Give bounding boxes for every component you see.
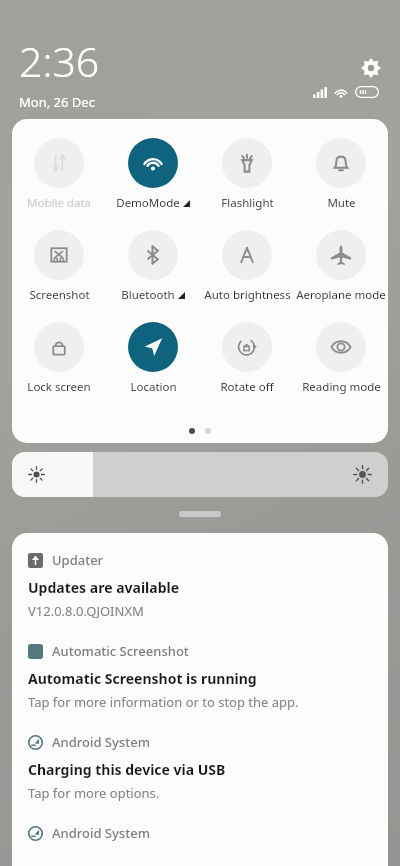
staticText: Mon, 26 Dec xyxy=(19,93,95,111)
button[interactable]: Reading mode xyxy=(294,320,388,397)
staticText: Automatic Screenshot xyxy=(52,642,189,660)
staticText: Android System xyxy=(52,733,150,751)
staticText: Updater xyxy=(52,551,104,569)
staticText: Reading mode xyxy=(302,379,381,395)
staticText: Charging this device via USB xyxy=(28,760,226,779)
button[interactable]: Flashlight xyxy=(200,136,294,213)
staticText: DemoMode xyxy=(116,195,180,211)
button[interactable]: Rotate off xyxy=(200,320,294,397)
staticText: Bluetooth xyxy=(121,287,175,303)
button[interactable]: Auto brightness xyxy=(200,228,294,305)
staticText: Android System xyxy=(52,824,150,842)
staticText: Mute xyxy=(327,195,356,211)
staticText: Lock screen xyxy=(27,379,91,395)
staticText: Automatic Screenshot is running xyxy=(28,669,257,688)
staticText: Rotate off xyxy=(220,379,274,395)
staticText: Screenshot xyxy=(29,287,90,303)
staticText: Updates are available xyxy=(28,578,180,597)
staticText: Flashlight xyxy=(221,195,274,211)
button[interactable]: DemoMode xyxy=(106,136,200,213)
button[interactable]: Settings xyxy=(353,50,389,86)
button[interactable]: Lock screen xyxy=(12,320,106,397)
staticText: Tap for more options. xyxy=(28,784,160,802)
staticText: Auto brightness xyxy=(204,287,291,303)
button[interactable]: Mobile data xyxy=(12,136,106,213)
staticText: Mobile data xyxy=(27,195,91,211)
staticText: 2:36 xyxy=(19,33,100,89)
button[interactable]: Brightness xyxy=(12,452,388,497)
button[interactable]: Android System xyxy=(12,733,388,802)
button[interactable]: Bluetooth xyxy=(106,228,200,305)
button[interactable]: Automatic Screenshot xyxy=(12,642,388,711)
button[interactable]: Android System xyxy=(12,824,388,842)
button[interactable]: Location xyxy=(106,320,200,397)
button[interactable]: Screenshot xyxy=(12,228,106,305)
button[interactable]: Aeroplane mode xyxy=(294,228,388,305)
button[interactable]: Mute xyxy=(294,136,388,213)
button[interactable]: Updater xyxy=(12,551,388,620)
staticText: Location xyxy=(130,379,177,395)
button[interactable]: Expand xyxy=(179,511,221,517)
staticText: V12.0.8.0.QJOINXM xyxy=(28,602,144,620)
staticText: Aeroplane mode xyxy=(296,287,386,303)
staticText: Tap for more information or to stop the … xyxy=(28,693,299,711)
